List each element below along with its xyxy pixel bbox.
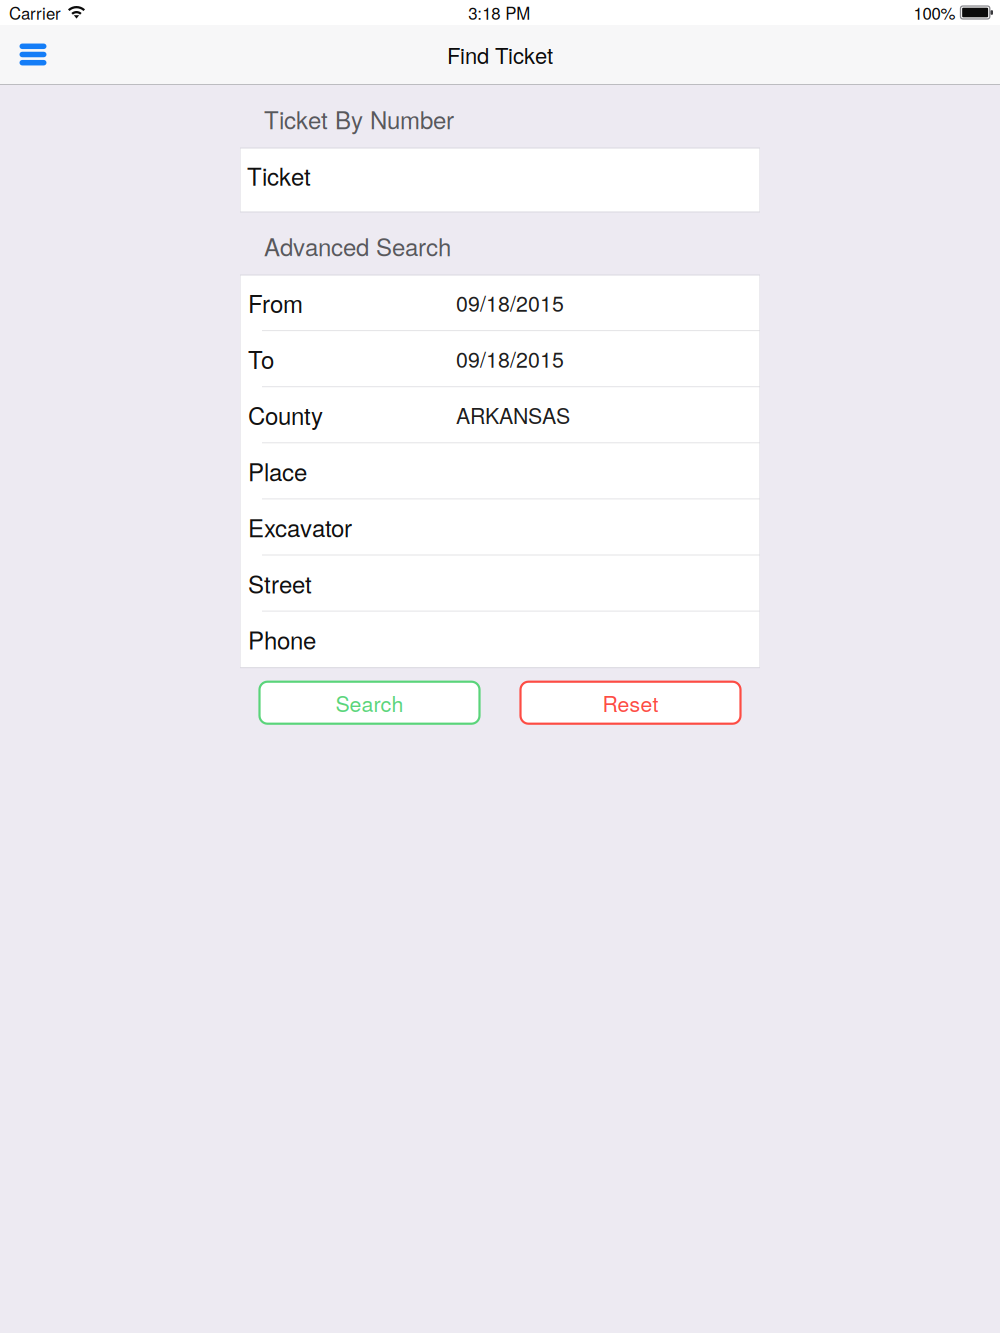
- button[interactable]: County: [240, 387, 760, 443]
- button[interactable]: Search: [259, 682, 479, 724]
- staticText: Find Ticket: [447, 39, 553, 70]
- staticText: Advanced Search: [264, 229, 451, 263]
- staticText: Ticket By Number: [264, 102, 454, 136]
- button[interactable]: Menu: [0, 25, 66, 84]
- staticText: 09/18/2015: [456, 343, 564, 374]
- staticText: From: [248, 285, 303, 320]
- button[interactable]: Reset: [520, 682, 740, 724]
- staticText: Street: [248, 566, 312, 600]
- button[interactable]: Place: [240, 443, 760, 499]
- staticText: 09/18/2015: [456, 287, 564, 318]
- button[interactable]: To: [240, 331, 760, 387]
- button[interactable]: Phone: [240, 612, 760, 668]
- staticText: Reset: [602, 687, 658, 718]
- staticText: Place: [248, 454, 307, 488]
- button[interactable]: Street: [240, 555, 760, 612]
- staticText: ARKANSAS: [456, 399, 570, 430]
- staticText: Excavator: [248, 510, 352, 544]
- staticText: Ticket: [247, 158, 311, 193]
- staticText: Phone: [248, 622, 316, 656]
- button[interactable]: From: [240, 275, 760, 331]
- staticText: To: [248, 341, 274, 376]
- staticText: 3:18 PM: [468, 0, 530, 25]
- staticText: 100%: [913, 0, 955, 25]
- staticText: Search: [335, 687, 403, 718]
- button[interactable]: Excavator: [240, 499, 760, 555]
- staticText: County: [248, 398, 323, 432]
- button[interactable]: Ticket: [240, 148, 760, 212]
- staticText: Carrier: [9, 0, 61, 25]
